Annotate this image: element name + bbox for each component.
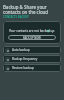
staticText: Auto backup [12, 48, 30, 52]
button[interactable]: Backup frequency [3, 55, 61, 63]
staticText: CONTACTS BACKUP [3, 15, 29, 19]
button[interactable]: BACK UP NOW [8, 35, 56, 40]
button[interactable]: Restore backup [3, 64, 61, 72]
staticText: contacts on the cloud [3, 9, 49, 15]
staticText: Backup & Share your [3, 4, 47, 10]
button[interactable]: Auto backup [3, 46, 61, 54]
staticText: Restore backup [12, 66, 34, 70]
staticText: Your contacts are not backed up [9, 29, 55, 33]
staticText: Backup frequency [12, 57, 38, 61]
staticText: BACK UP NOW [23, 36, 41, 40]
